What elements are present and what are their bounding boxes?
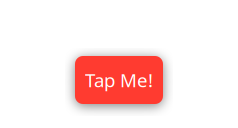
staticText: Tap Me! [85, 68, 153, 92]
button[interactable]: Tap Me! [75, 56, 163, 104]
